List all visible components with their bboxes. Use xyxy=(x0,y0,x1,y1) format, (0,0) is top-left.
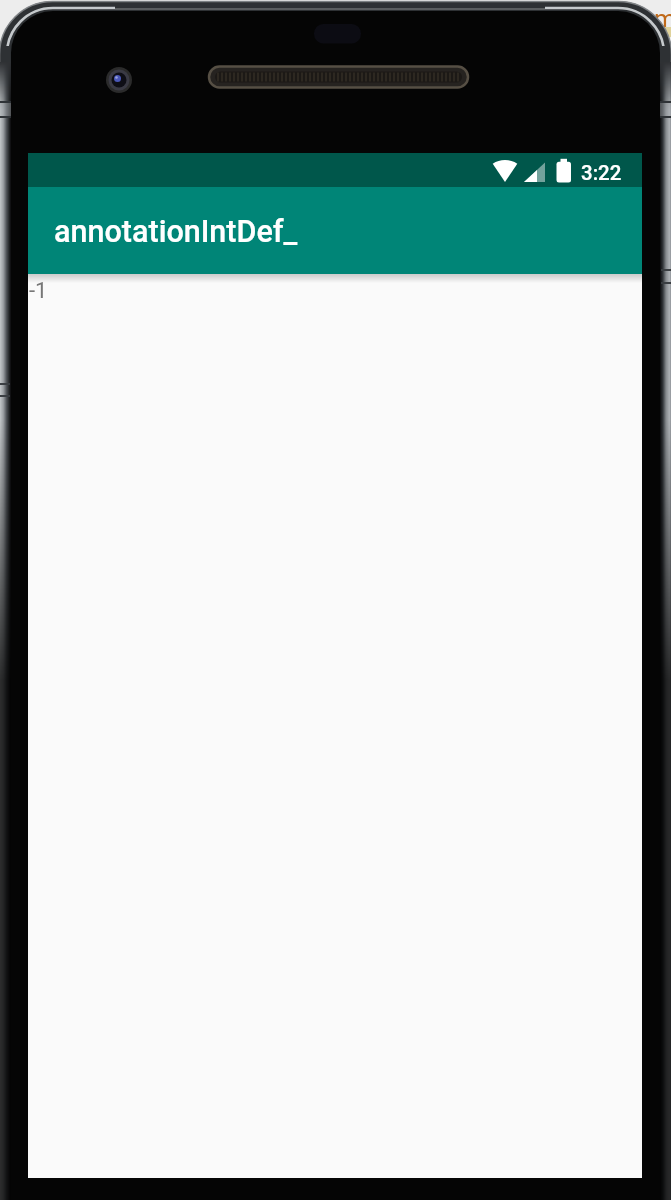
staticText: m xyxy=(654,5,671,34)
staticText: 3:22 xyxy=(581,161,622,185)
staticText: -1 xyxy=(29,278,48,304)
button[interactable]: annotationIntDef_ xyxy=(28,187,642,274)
staticText: annotationIntDef_ xyxy=(54,214,298,250)
